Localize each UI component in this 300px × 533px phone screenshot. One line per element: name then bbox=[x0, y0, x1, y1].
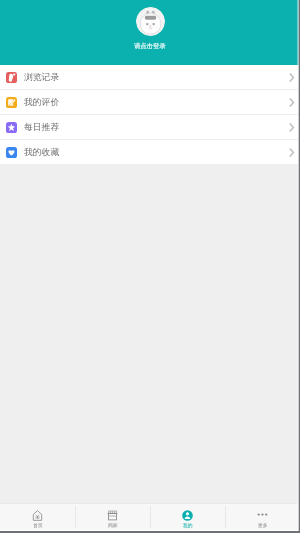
staticText: 我的 bbox=[183, 522, 193, 528]
button[interactable]: 浏览记录 bbox=[0, 65, 300, 89]
button[interactable]: 我的评价 bbox=[0, 90, 300, 114]
staticText: 请点击登录 bbox=[134, 42, 166, 50]
button[interactable]: Avatar bbox=[136, 7, 165, 36]
staticText: 商家 bbox=[108, 522, 118, 528]
button[interactable]: 每日推荐 bbox=[0, 115, 300, 139]
button[interactable]: 我的收藏 bbox=[0, 140, 300, 164]
staticText: 首页 bbox=[33, 522, 43, 528]
button[interactable]: 请点击登录 bbox=[0, 42, 300, 50]
button[interactable]: Mine bbox=[150, 504, 225, 530]
staticText: 更多 bbox=[258, 522, 268, 528]
button[interactable]: More bbox=[225, 504, 300, 530]
staticText: 我的收藏 bbox=[24, 147, 60, 158]
staticText: 我的评价 bbox=[24, 97, 60, 108]
button[interactable]: Home bbox=[0, 504, 75, 530]
staticText: 浏览记录 bbox=[24, 72, 60, 83]
button[interactable]: Merchants bbox=[75, 504, 150, 530]
staticText: 每日推荐 bbox=[24, 122, 60, 133]
